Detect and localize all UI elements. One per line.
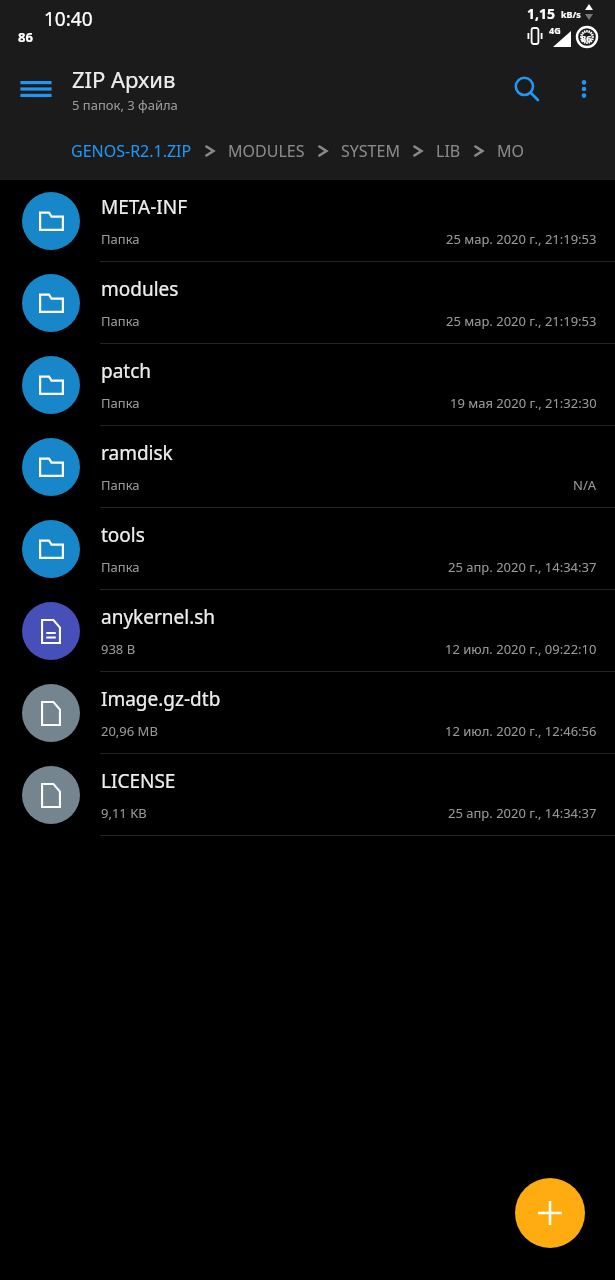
button[interactable]: SYSTEM [341,140,400,162]
staticText: tools [101,522,145,548]
button[interactable]: MODULES [228,140,305,162]
button[interactable]: More options [555,55,613,123]
staticText: 25 мар. 2020 г., 21:19:53 [446,230,597,248]
staticText: 25 апр. 2020 г., 14:34:37 [448,804,597,822]
button[interactable]: patch [0,344,615,426]
staticText: LICENSE [101,768,176,794]
staticText: ramdisk [101,440,173,466]
staticText: 20,96 MB [101,722,158,740]
button[interactable]: LIB [436,140,461,162]
staticText: 25 апр. 2020 г., 14:34:37 [448,558,597,576]
button[interactable]: Add [515,1178,585,1248]
staticText: modules [101,276,179,302]
staticText: META-INF [101,194,188,220]
staticText: 1,15 [527,4,556,23]
staticText: N/A [573,476,597,494]
staticText: anykernel.sh [101,604,216,630]
button[interactable]: META-INF [0,180,615,262]
button[interactable]: GENOS-R2.1.ZIP [71,140,192,162]
staticText: Папка [101,230,140,248]
staticText: 12 июл. 2020 г., 09:22:10 [445,640,597,658]
staticText: 19 мая 2020 г., 21:32:30 [450,394,597,412]
button[interactable]: anykernel.sh [0,590,615,672]
staticText: SYSTEM [341,140,400,162]
staticText: 9,11 KB [101,804,147,822]
staticText: Папка [101,558,140,576]
staticText: ZIP Архив [72,64,176,94]
staticText: MODULES [228,140,305,162]
button[interactable]: Search [499,55,555,123]
staticText: Папка [101,394,140,412]
staticText: patch [101,358,152,384]
button[interactable]: tools [0,508,615,590]
staticText: 5 папок, 3 файла [72,96,178,114]
staticText: GENOS-R2.1.ZIP [71,140,192,162]
staticText: Папка [101,312,140,330]
button[interactable]: ramdisk [0,426,615,508]
button[interactable]: LICENSE [0,754,615,836]
staticText: LIB [436,140,461,162]
staticText: 25 мар. 2020 г., 21:19:53 [446,312,597,330]
staticText: 86 [18,28,33,46]
staticText: MO [497,140,525,162]
button[interactable]: modules [0,262,615,344]
staticText: 938 B [101,640,136,658]
button[interactable]: Open navigation menu [0,55,72,123]
staticText: Image.gz-dtb [101,686,221,712]
button[interactable]: MO [497,140,525,162]
staticText: kB/s [561,8,581,20]
button[interactable]: Image.gz-dtb [0,672,615,754]
staticText: 4G [549,24,561,36]
staticText: 86 [581,32,592,44]
staticText: Папка [101,476,140,494]
staticText: 10:40 [44,6,93,32]
staticText: 12 июл. 2020 г., 12:46:56 [445,722,597,740]
